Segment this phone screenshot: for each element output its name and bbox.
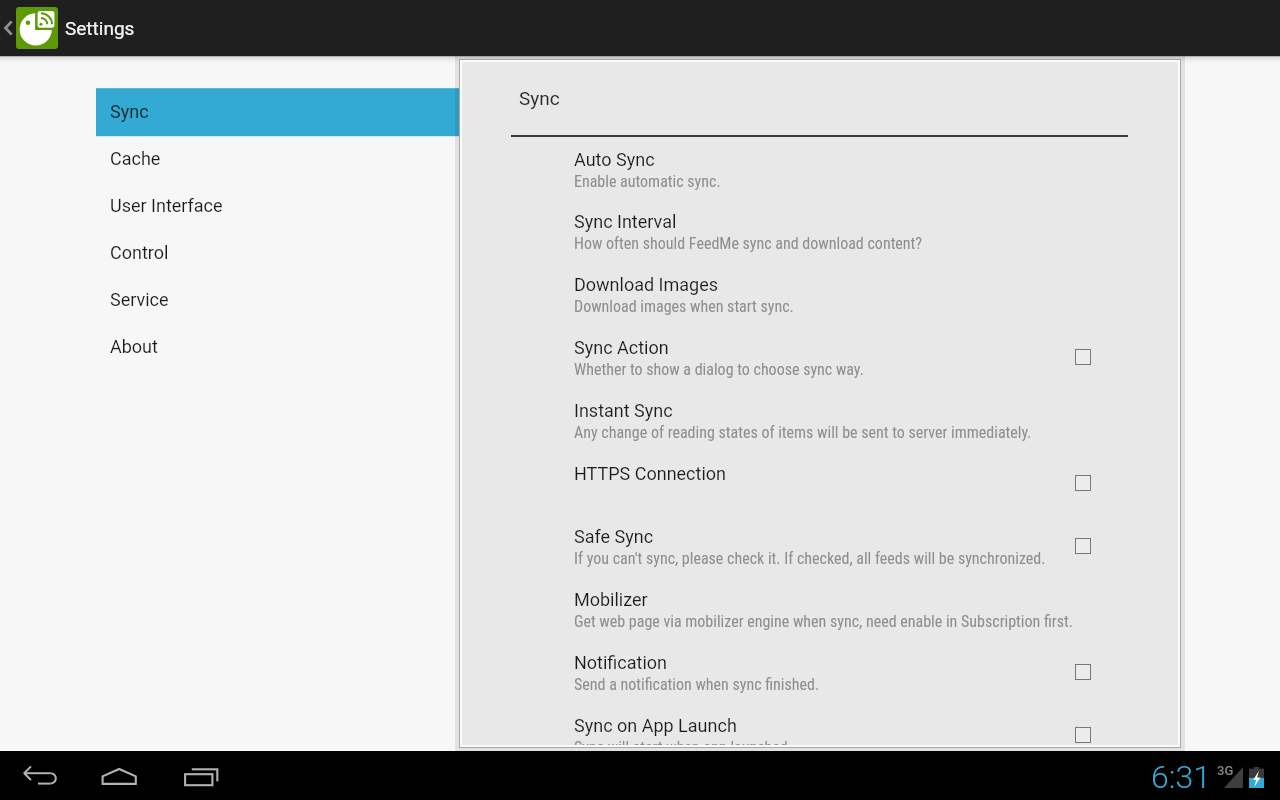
staticText: Sync (519, 87, 560, 109)
button[interactable]: Home (88, 751, 152, 800)
staticText: Service (110, 289, 169, 310)
staticText: Sync Action (574, 337, 669, 358)
staticText: Settings (65, 17, 135, 39)
staticText: Safe Sync (574, 526, 654, 547)
staticText: Enable automatic sync. (574, 172, 721, 191)
staticText: Cache (110, 148, 161, 169)
staticText: How often should FeedMe sync and downloa… (574, 234, 923, 253)
staticText: Download images when start sync. (574, 297, 794, 316)
button[interactable]: Cache (96, 135, 460, 182)
button[interactable]: Safe Sync (462, 526, 1178, 588)
staticText: Mobilizer (574, 589, 648, 610)
staticText: Instant Sync (574, 400, 673, 421)
button[interactable]: Recent apps (169, 753, 233, 800)
button[interactable]: Instant Sync (462, 400, 1178, 462)
staticText: Get web page via mobilizer engine when s… (574, 612, 1073, 631)
button[interactable]: Sync (96, 88, 460, 135)
button[interactable]: Back (6, 751, 74, 800)
staticText: Auto Sync (574, 149, 655, 170)
staticText: Sync Interval (574, 211, 677, 232)
staticText: If you can't sync, please check it. If c… (574, 549, 1046, 568)
button[interactable]: Sync Action (462, 337, 1178, 399)
button[interactable]: FeedMe (16, 7, 58, 49)
button[interactable]: Mobilizer (462, 589, 1178, 651)
button[interactable]: Navigate up (0, 6, 16, 50)
staticText: Notification (574, 652, 668, 673)
staticText: Send a notification when sync finished. (574, 675, 820, 694)
staticText: Whether to show a dialog to choose sync … (574, 360, 864, 379)
button[interactable]: Sync Interval (462, 211, 1178, 273)
button[interactable]: User Interface (96, 182, 460, 229)
staticText: Sync (110, 101, 149, 122)
button[interactable]: Auto Sync (462, 149, 1178, 211)
button[interactable]: HTTPS Connection (462, 463, 1178, 525)
staticText: HTTPS Connection (574, 463, 727, 484)
button[interactable]: Service (96, 276, 460, 323)
button[interactable]: Sync on App Launch (462, 715, 1178, 745)
staticText: 6:31 (1151, 758, 1211, 796)
staticText: Sync on App Launch (574, 715, 737, 736)
staticText: User Interface (110, 195, 223, 216)
staticText: About (110, 336, 158, 357)
staticText: 3G (1217, 763, 1234, 778)
button[interactable]: Control (96, 229, 460, 276)
staticText: Download Images (574, 274, 719, 295)
staticText: Control (110, 242, 169, 263)
staticText: Sync will start when app launched. (574, 738, 792, 745)
button[interactable]: Download Images (462, 274, 1178, 336)
staticText: Any change of reading states of items wi… (574, 423, 1032, 442)
button[interactable]: Notification (462, 652, 1178, 714)
button[interactable]: About (96, 323, 460, 370)
